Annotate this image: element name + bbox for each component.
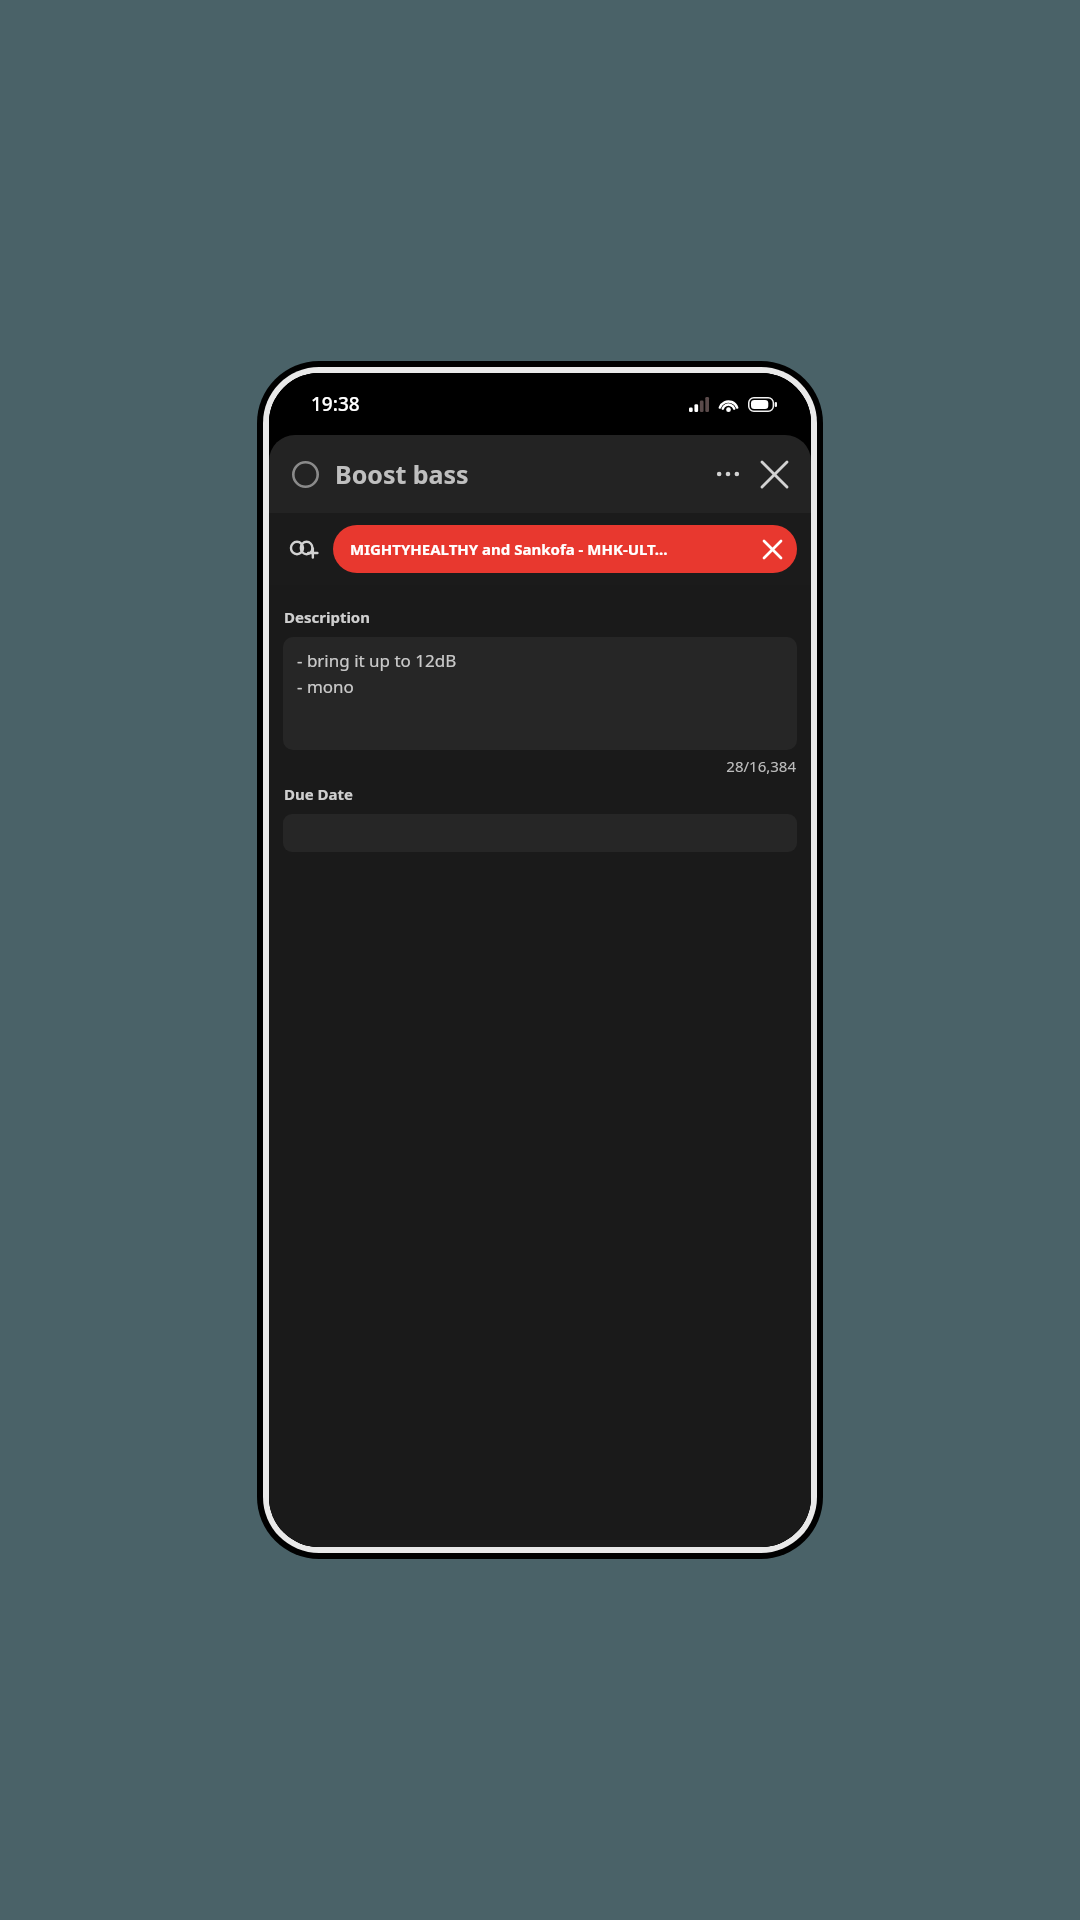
staticText: Boost bass — [335, 457, 705, 491]
button[interactable]: - bring it up to 12dB — [283, 637, 797, 750]
staticText: - bring it up to 12dB — [297, 649, 457, 672]
staticText: 19:38 — [311, 391, 360, 417]
staticText: - mono — [297, 675, 354, 698]
button[interactable]: Mark complete — [283, 452, 327, 496]
button[interactable]: Add link — [283, 528, 325, 570]
button[interactable]: Close — [751, 451, 797, 497]
button[interactable]: MIGHTYHEALTHY and Sankofa - MHK-ULT… — [333, 525, 797, 573]
staticText: MIGHTYHEALTHY and Sankofa - MHK-ULT… — [350, 539, 751, 559]
staticText: Due Date — [284, 784, 354, 804]
staticText: 28/16,384 — [269, 756, 796, 776]
staticText: Description — [284, 607, 370, 627]
button[interactable]: Remove link — [757, 534, 787, 564]
button[interactable]: More options — [705, 451, 751, 497]
